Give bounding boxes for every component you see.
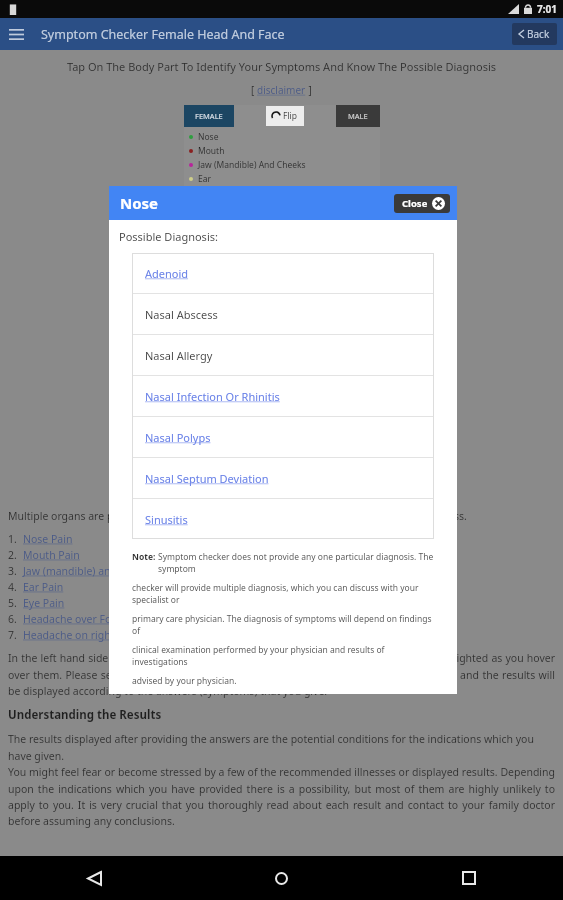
button[interactable]: Nasal Polyps (132, 417, 434, 457)
button[interactable]: Headache on right side (23, 628, 138, 642)
button[interactable]: MALE (336, 105, 380, 127)
staticText: Nasal Abscess (145, 307, 218, 322)
button[interactable]: Flip (266, 106, 304, 126)
staticText: Sinusitis (145, 512, 188, 527)
button[interactable]: Home (261, 858, 301, 898)
button[interactable]: Nose (189, 130, 380, 144)
staticText: Mouth (198, 145, 225, 157)
staticText: 7:01 (537, 2, 557, 16)
staticText: Nasal Septum Deviation (145, 471, 269, 486)
staticText: 3. (8, 564, 23, 578)
staticText: 1. (8, 532, 23, 546)
staticText: primary care physician. The diagnosis of… (132, 613, 434, 637)
staticText: Possible Diagnosis: (119, 229, 218, 244)
staticText: 5. (8, 596, 23, 610)
button[interactable]: disclaimer (257, 83, 306, 97)
staticText: 4. (8, 580, 23, 594)
staticText: In the left hand side there is an image … (8, 651, 555, 698)
staticText: Nasal Infection Or Rhinitis (145, 389, 280, 404)
button[interactable]: Ear Pain (23, 580, 64, 594)
staticText: Nasal Polyps (145, 430, 211, 445)
staticText: Tap On The Body Part To Identify Your Sy… (0, 59, 563, 74)
button[interactable]: Jaw (Mandible) And Cheeks (189, 158, 380, 172)
staticText: Back (527, 27, 550, 41)
staticText: advised by your physician. (132, 675, 237, 687)
staticText: Nose (198, 131, 219, 143)
button[interactable]: Mouth Pain (23, 548, 80, 562)
button[interactable]: Recent apps (449, 858, 489, 898)
button[interactable]: Eye Pain (23, 596, 65, 610)
button[interactable]: Nose Pain (23, 532, 73, 546)
button[interactable]: Close (394, 194, 450, 213)
staticText: ] (306, 83, 312, 97)
button[interactable]: Back (512, 23, 557, 45)
staticText: Adenoid (145, 266, 189, 281)
button[interactable]: Mouth (189, 144, 380, 158)
button[interactable]: Nasal Septum Deviation (132, 458, 434, 498)
staticText: Understanding the Results (8, 707, 162, 723)
staticText: FEMALE (195, 111, 223, 121)
staticText: Nasal Allergy (145, 348, 213, 363)
staticText: Note: (132, 551, 158, 563)
button[interactable]: Jaw (mandible) and cheek Pain (23, 564, 173, 578)
staticText: 7. (8, 628, 23, 642)
staticText: checker will provide multiple diagnosis,… (132, 582, 434, 606)
staticText: Close (402, 197, 428, 210)
staticText: Ear (198, 173, 212, 185)
staticText: Jaw (Mandible) And Cheeks (198, 159, 306, 171)
staticText: Symptom checker does not provide any one… (158, 551, 434, 575)
button[interactable]: Nasal Infection Or Rhinitis (132, 376, 434, 416)
staticText: 6. (8, 612, 23, 626)
button[interactable]: Nasal Abscess (132, 294, 434, 334)
button[interactable]: Nasal Allergy (132, 335, 434, 375)
staticText: clinical examination performed by your p… (132, 644, 434, 668)
staticText: Nose (120, 193, 159, 213)
staticText: Flip (283, 110, 298, 122)
button[interactable]: Ear (189, 172, 380, 186)
button[interactable]: Headache over Forehead (23, 612, 147, 626)
button[interactable]: Menu (0, 18, 32, 50)
staticText: Multiple organs are present in the head … (8, 509, 467, 523)
staticText: The results displayed after providing th… (8, 732, 555, 763)
staticText: Symptom Checker Female Head And Face (41, 26, 285, 43)
staticText: [ (251, 83, 257, 97)
button[interactable]: FEMALE (184, 105, 234, 127)
button[interactable]: Back (74, 858, 114, 898)
staticText: You might feel fear or become stressed b… (8, 765, 555, 828)
button[interactable]: Sinusitis (132, 499, 434, 539)
staticText: MALE (348, 111, 368, 121)
button[interactable]: Adenoid (132, 253, 434, 293)
staticText: 2. (8, 548, 23, 562)
